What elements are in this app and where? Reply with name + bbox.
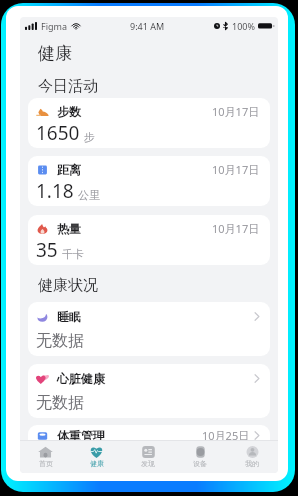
staticText: 10月17日 [212,104,260,119]
staticText: 心脏健康 [57,371,105,386]
staticText: 100% [232,20,255,32]
staticText: 10月17日 [212,162,260,177]
staticText: 9:41 AM [130,20,165,32]
staticText: 健康状况 [38,276,98,295]
staticText: 千卡 [62,247,84,261]
button[interactable]: 我的 [226,441,278,473]
button[interactable]: 热量 [28,215,270,265]
staticText: 35 [36,237,58,263]
button[interactable]: 设备 [174,441,226,473]
button[interactable]: 步数 [28,98,270,148]
button[interactable]: 首页 [20,441,71,473]
staticText: 热量 [57,221,81,236]
button[interactable]: 体重管理 [28,425,270,473]
staticText: 距离 [57,162,81,177]
staticText: 步数 [57,104,81,119]
staticText: 健康 [90,459,104,468]
staticText: 无数据 [36,331,84,351]
staticText: 我的 [245,459,259,468]
staticText: 睡眠 [57,309,81,324]
staticText: 发现 [141,459,155,468]
button[interactable]: 心脏健康 [28,364,270,418]
staticText: 无数据 [36,393,84,413]
staticText: 设备 [193,459,207,468]
staticText: 1650 [36,120,80,146]
staticText: 今日活动 [38,77,98,96]
button[interactable]: 睡眠 [28,302,270,356]
staticText: 10月25日 [202,428,250,443]
staticText: 公里 [78,188,100,202]
staticText: 首页 [39,459,53,468]
staticText: 健康 [38,43,72,64]
staticText: 体重管理 [57,428,105,443]
button[interactable]: 距离 [28,156,270,206]
staticText: 1.18 [36,178,74,204]
staticText: Figma [41,20,67,32]
button[interactable]: 发现 [122,441,174,473]
staticText: 10月17日 [212,221,260,236]
button[interactable]: 健康 [71,441,122,473]
staticText: 步 [84,130,95,144]
